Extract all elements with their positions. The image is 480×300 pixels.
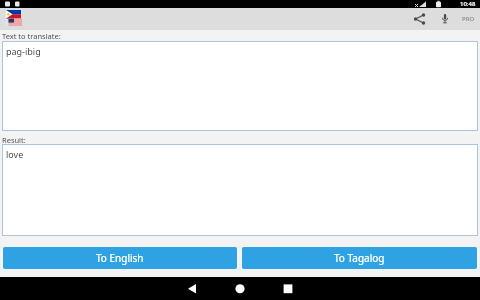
button[interactable]: To English (3, 247, 237, 269)
staticText: To English (96, 251, 144, 265)
button[interactable]: PRO (458, 8, 478, 30)
button[interactable]: To Tagalog (242, 247, 477, 269)
staticText: Result: (2, 135, 26, 145)
staticText: Text to translate: (2, 31, 61, 41)
button[interactable]: pag-ibig (2, 41, 478, 131)
button[interactable] (411, 11, 427, 27)
staticText: To Tagalog (334, 251, 385, 265)
button[interactable] (276, 277, 300, 300)
staticText: pag-ibig (6, 45, 41, 57)
staticText: love (6, 148, 24, 160)
button[interactable] (437, 11, 453, 27)
staticText: PRO (462, 15, 475, 23)
button[interactable] (180, 277, 204, 300)
staticText: 10:48 (460, 0, 476, 8)
button[interactable] (228, 277, 252, 300)
